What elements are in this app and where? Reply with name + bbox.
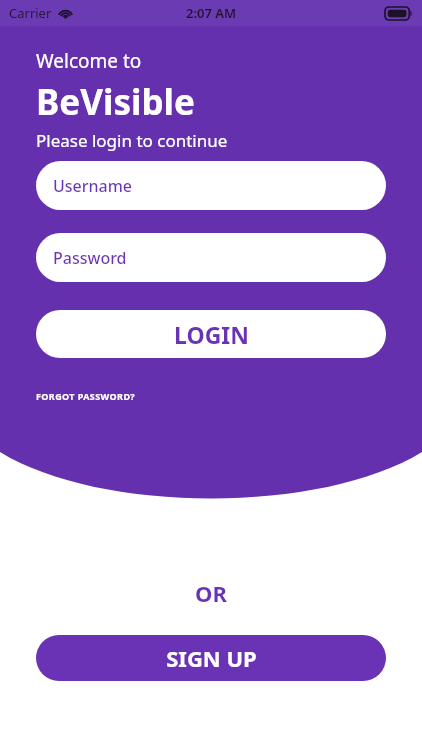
button[interactable]: LOGIN (36, 310, 386, 358)
button[interactable]: SIGN UP (36, 635, 386, 681)
staticText: FORGOT PASSWORD? (36, 390, 136, 402)
button[interactable]: FORGOT PASSWORD? (35, 386, 137, 406)
staticText: Username (53, 175, 133, 197)
button[interactable]: Password (36, 233, 386, 282)
staticText: OR (195, 578, 227, 608)
staticText: BeVisible (36, 78, 195, 126)
button[interactable]: Username (36, 161, 386, 210)
staticText: Carrier (9, 4, 52, 22)
staticText: Welcome to (36, 48, 142, 74)
staticText: LOGIN (174, 319, 249, 350)
staticText: 2:07 AM (186, 4, 237, 22)
staticText: Password (53, 247, 127, 269)
staticText: SIGN UP (166, 643, 257, 673)
staticText: Please login to continue (36, 129, 228, 152)
